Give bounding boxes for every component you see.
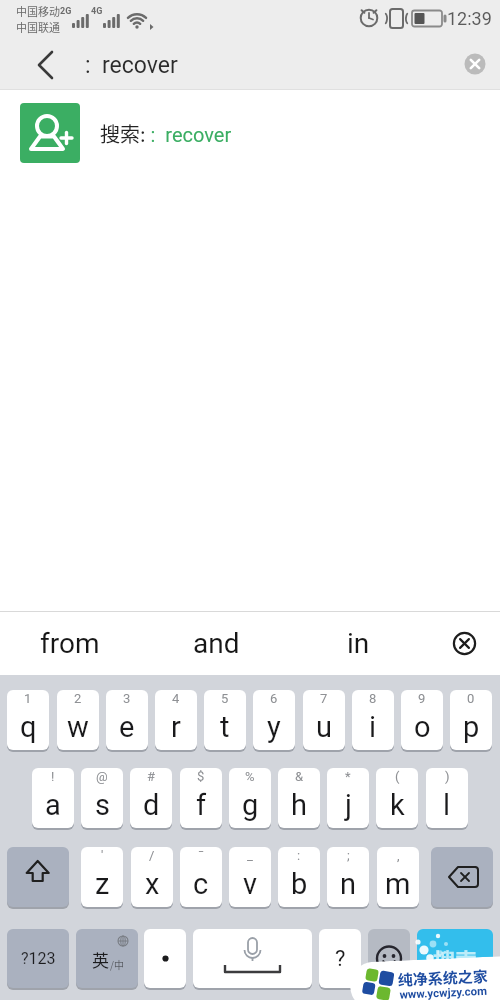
button[interactable]: ? [319, 929, 361, 988]
staticText: # [147, 769, 156, 784]
staticText: 英 [92, 947, 109, 972]
staticText: p [463, 710, 480, 744]
staticText: 3 [123, 691, 131, 706]
staticText: ; [347, 848, 350, 863]
button[interactable]: 英 [76, 929, 138, 988]
staticText: l [443, 788, 451, 822]
staticText: / [149, 848, 155, 863]
staticText: 搜索 [433, 943, 478, 975]
button[interactable] [368, 929, 410, 988]
button[interactable]: ¯ [180, 847, 222, 907]
staticText: z [95, 867, 110, 901]
staticText: f [196, 788, 207, 822]
button[interactable]: 搜索: : recover [20, 103, 480, 163]
staticText: u [316, 710, 332, 744]
staticText: d [143, 788, 160, 822]
staticText: & [295, 769, 304, 784]
button[interactable] [25, 48, 65, 82]
staticText: t [220, 710, 230, 744]
button[interactable]: 6 [253, 690, 295, 750]
button[interactable]: 2 [57, 690, 99, 750]
staticText: ( [395, 769, 400, 784]
staticText: 2 [74, 691, 82, 706]
button[interactable]: * [327, 768, 369, 828]
staticText: 12:39 [447, 8, 492, 29]
button[interactable]: # [130, 768, 172, 828]
staticText: 4G [91, 6, 103, 17]
button[interactable] [193, 929, 312, 988]
button[interactable]: 0 [450, 690, 492, 750]
button[interactable] [7, 847, 69, 907]
staticText: 7 [320, 691, 328, 706]
button[interactable]: ) [426, 768, 468, 828]
staticText: _ [247, 848, 253, 863]
staticText: : [297, 848, 301, 863]
staticText: * [345, 769, 351, 784]
staticText: 8 [369, 691, 377, 706]
button[interactable]: ; [327, 847, 369, 907]
staticText: ? [335, 946, 346, 972]
button[interactable]: & [278, 768, 320, 828]
button[interactable]: $ [180, 768, 222, 828]
staticText: and [193, 627, 240, 660]
staticText: g [242, 788, 259, 822]
button[interactable]: 3 [106, 690, 148, 750]
staticText: b [291, 867, 308, 901]
staticText: 搜索: : recover [100, 119, 232, 148]
button[interactable]: @ [81, 768, 123, 828]
staticText: % [245, 769, 255, 784]
button[interactable]: , [377, 847, 419, 907]
staticText: n [340, 867, 357, 901]
button[interactable] [456, 45, 494, 83]
button[interactable]: ?123 [7, 929, 69, 988]
staticText: r [171, 710, 181, 744]
button[interactable] [144, 929, 186, 988]
staticText: c [193, 867, 209, 901]
staticText: ! [51, 769, 55, 784]
staticText: : recover [85, 52, 178, 78]
button[interactable]: 7 [303, 690, 345, 750]
button[interactable]: / [131, 847, 173, 907]
staticText: 4 [172, 691, 180, 706]
button[interactable]: 搜索 [417, 929, 493, 988]
staticText: i [369, 710, 377, 744]
button[interactable]: % [229, 768, 271, 828]
button[interactable]: in [318, 612, 398, 675]
staticText: from [40, 627, 100, 660]
button[interactable]: _ [229, 847, 271, 907]
staticText: h [291, 788, 307, 822]
staticText: e [119, 710, 135, 744]
staticText: v [243, 867, 258, 901]
button[interactable]: ' [81, 847, 123, 907]
staticText: 纯净系统之家 [397, 965, 489, 991]
button[interactable]: 1 [7, 690, 49, 750]
staticText: , [397, 848, 400, 863]
staticText: ¯ [198, 848, 204, 863]
staticText: k [390, 788, 405, 822]
staticText: in [347, 627, 370, 660]
staticText: m [385, 867, 411, 901]
button[interactable] [446, 625, 483, 662]
staticText: 中国联通 [16, 19, 60, 35]
staticText: j [345, 788, 352, 822]
button[interactable]: 5 [204, 690, 246, 750]
button[interactable]: : [278, 847, 320, 907]
staticText: o [414, 710, 431, 744]
button[interactable]: from [30, 612, 110, 675]
button[interactable]: 4 [155, 690, 197, 750]
staticText: 2G [60, 6, 72, 17]
button[interactable]: and [176, 612, 256, 675]
button[interactable]: 9 [401, 690, 443, 750]
staticText: a [45, 788, 61, 822]
staticText: @ [96, 769, 108, 784]
staticText: ?123 [21, 949, 56, 968]
staticText: 6 [270, 691, 278, 706]
button[interactable]: 8 [352, 690, 394, 750]
button[interactable]: ! [32, 768, 74, 828]
staticText: q [20, 710, 37, 744]
staticText: w [67, 710, 89, 744]
staticText: ) [445, 769, 450, 784]
button[interactable] [431, 847, 493, 907]
button[interactable]: ( [376, 768, 418, 828]
staticText: /中 [110, 957, 124, 971]
